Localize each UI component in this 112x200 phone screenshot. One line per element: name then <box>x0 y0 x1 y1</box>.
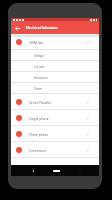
staticText: Conversion <box>29 148 47 152</box>
button[interactable]: Current <box>11 61 99 72</box>
button[interactable]: Conversion <box>11 142 99 158</box>
button[interactable]: Power <box>11 83 99 94</box>
button[interactable]: Voltage <box>11 50 99 61</box>
button[interactable]: Series Parallel <box>11 94 99 110</box>
button[interactable]: Single phase <box>11 110 99 126</box>
staticText: Three phase <box>29 132 49 136</box>
staticText: Single phase <box>29 116 49 120</box>
staticText: Resistance <box>34 76 48 80</box>
staticText: Electrical Calculator <box>26 25 58 30</box>
staticText: Series Parallel <box>29 100 51 104</box>
button[interactable]: Three phase <box>11 126 99 142</box>
button[interactable]: Home <box>50 166 62 175</box>
staticText: Current <box>34 65 45 69</box>
button[interactable]: Resistance <box>11 72 99 83</box>
button[interactable]: Back <box>12 23 22 33</box>
staticText: Voltage <box>34 54 44 58</box>
button[interactable]: Back <box>28 166 37 175</box>
staticText: Power <box>34 87 43 91</box>
button[interactable]: OHM law <box>11 34 99 50</box>
staticText: OHM law <box>29 40 44 44</box>
